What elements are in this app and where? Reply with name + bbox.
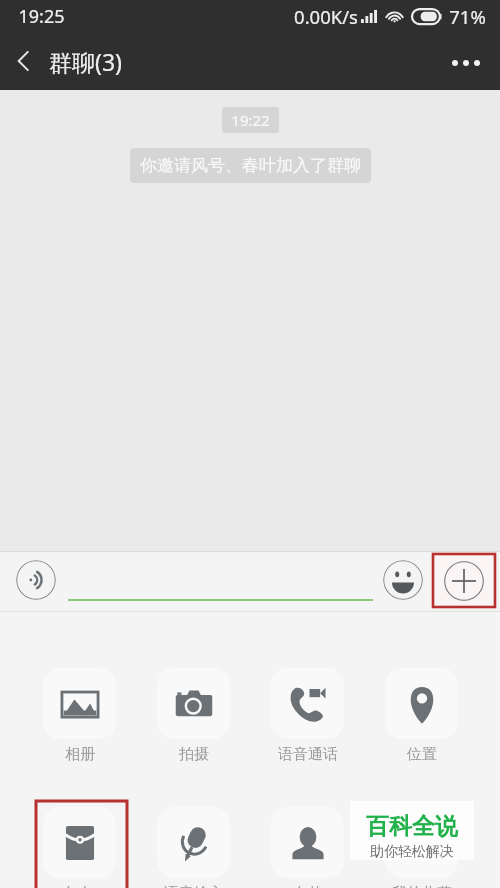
- button[interactable]: More functions: [433, 554, 495, 607]
- staticText: 相册: [65, 745, 95, 764]
- button[interactable]: 红包: [43, 807, 116, 888]
- staticText: 你邀请风号、春叶加入了群聊: [140, 155, 361, 176]
- staticText: 19:22: [231, 110, 270, 130]
- button[interactable]: 位置: [385, 668, 458, 764]
- staticText: 百科全说: [366, 812, 458, 841]
- button[interactable]: Emoji: [383, 560, 423, 600]
- staticText: 0.00K/s: [294, 4, 358, 29]
- button[interactable]: 我的收藏: [385, 807, 458, 888]
- button[interactable]: 名片: [271, 807, 344, 888]
- staticText: 我的收藏: [392, 884, 452, 888]
- button[interactable]: 相册: [43, 668, 116, 764]
- staticText: 红包: [65, 884, 95, 888]
- staticText: 19:25: [18, 4, 65, 29]
- staticText: 名片: [293, 884, 323, 888]
- button[interactable]: 语音通话: [271, 668, 344, 764]
- staticText: 语音通话: [278, 745, 338, 764]
- button[interactable]: 语音输入: [157, 807, 230, 888]
- staticText: 语音输入: [164, 884, 224, 888]
- button[interactable]: Back: [0, 36, 46, 86]
- staticText: 位置: [407, 745, 437, 764]
- button[interactable]: More options: [434, 44, 500, 79]
- button[interactable]: 拍摄: [157, 668, 230, 764]
- staticText: 群聊(3): [49, 46, 122, 77]
- staticText: 71%: [449, 4, 486, 29]
- staticText: 助你轻松解决: [370, 843, 454, 861]
- button[interactable]: Voice message: [16, 560, 56, 600]
- staticText: 拍摄: [179, 745, 209, 764]
